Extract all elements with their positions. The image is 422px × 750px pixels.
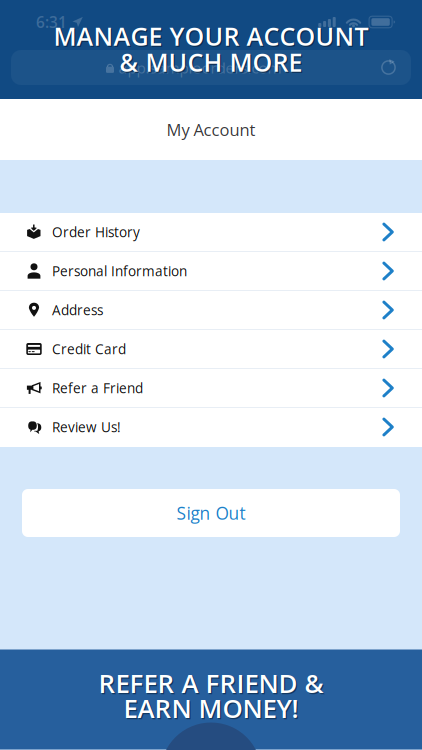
button[interactable]: Address [0,291,422,330]
button[interactable]: Credit Card [0,330,422,369]
staticText: Sign Out [176,501,245,525]
staticText: EARN MONEY! [123,690,298,726]
staticText: REFER A FRIEND & [100,667,325,702]
staticText: 6:31 [36,12,67,32]
staticText: Refer a Friend [52,379,143,397]
button[interactable]: Review Us! [0,408,422,447]
staticText: Review Us! [52,418,121,436]
staticText: & MUCH MORE [121,46,304,80]
staticText: Personal Information [52,262,187,280]
staticText: app.sampleorders.com [119,57,282,78]
button[interactable]: Order History [0,213,422,252]
staticText: EARN MONEY! [125,692,300,727]
staticText: REFER A FRIEND & [98,665,323,701]
staticText: & MUCH MORE [119,45,302,79]
staticText: My Account [166,118,255,141]
staticText: Order History [52,223,140,241]
staticText: MANAGE YOUR ACCOUNT [55,20,370,54]
button[interactable]: Sign Out [0,489,422,537]
button[interactable]: Refer a Friend [0,369,422,408]
button[interactable]: Personal Information [0,252,422,291]
staticText: MANAGE YOUR ACCOUNT [53,19,368,53]
staticText: Credit Card [52,340,126,358]
staticText: Address [52,301,103,319]
